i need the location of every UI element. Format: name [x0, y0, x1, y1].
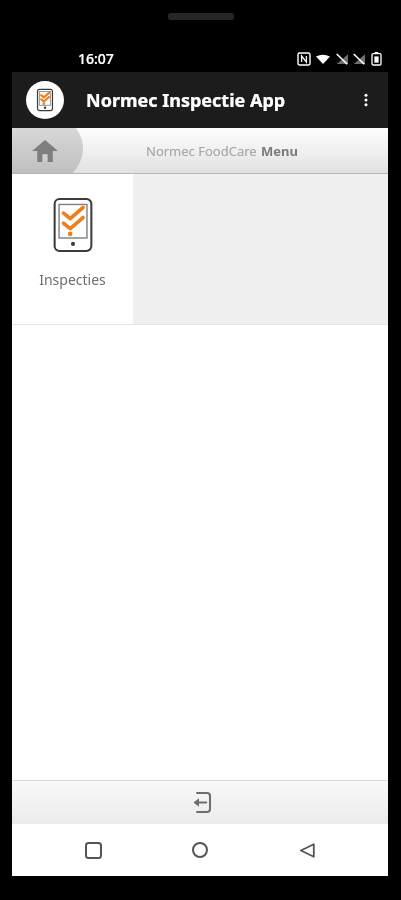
button[interactable]: Normec app logo: [26, 81, 64, 119]
button[interactable]: Home: [174, 824, 226, 876]
button[interactable]: More options: [344, 72, 388, 128]
staticText: Menu: [261, 142, 298, 160]
button[interactable]: Recent apps: [67, 824, 119, 876]
staticText: Normec Inspectie App: [86, 88, 286, 113]
staticText: Normec FoodCare: [146, 142, 261, 160]
button[interactable]: Inspecties: [12, 174, 133, 324]
staticText: 16:07: [78, 49, 114, 68]
button[interactable]: Home breadcrumb: [12, 128, 102, 174]
button[interactable]: Back: [281, 824, 333, 876]
button[interactable]: Exit: [180, 782, 220, 822]
staticText: Inspecties: [39, 270, 106, 289]
